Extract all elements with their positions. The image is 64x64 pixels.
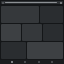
button[interactable]: Explore: [23, 60, 27, 64]
button[interactable]: Profile: [50, 60, 54, 64]
button[interactable]: Home: [10, 60, 14, 64]
button[interactable]: Library: [37, 60, 41, 64]
button[interactable]: Menu: [1, 1, 63, 4]
